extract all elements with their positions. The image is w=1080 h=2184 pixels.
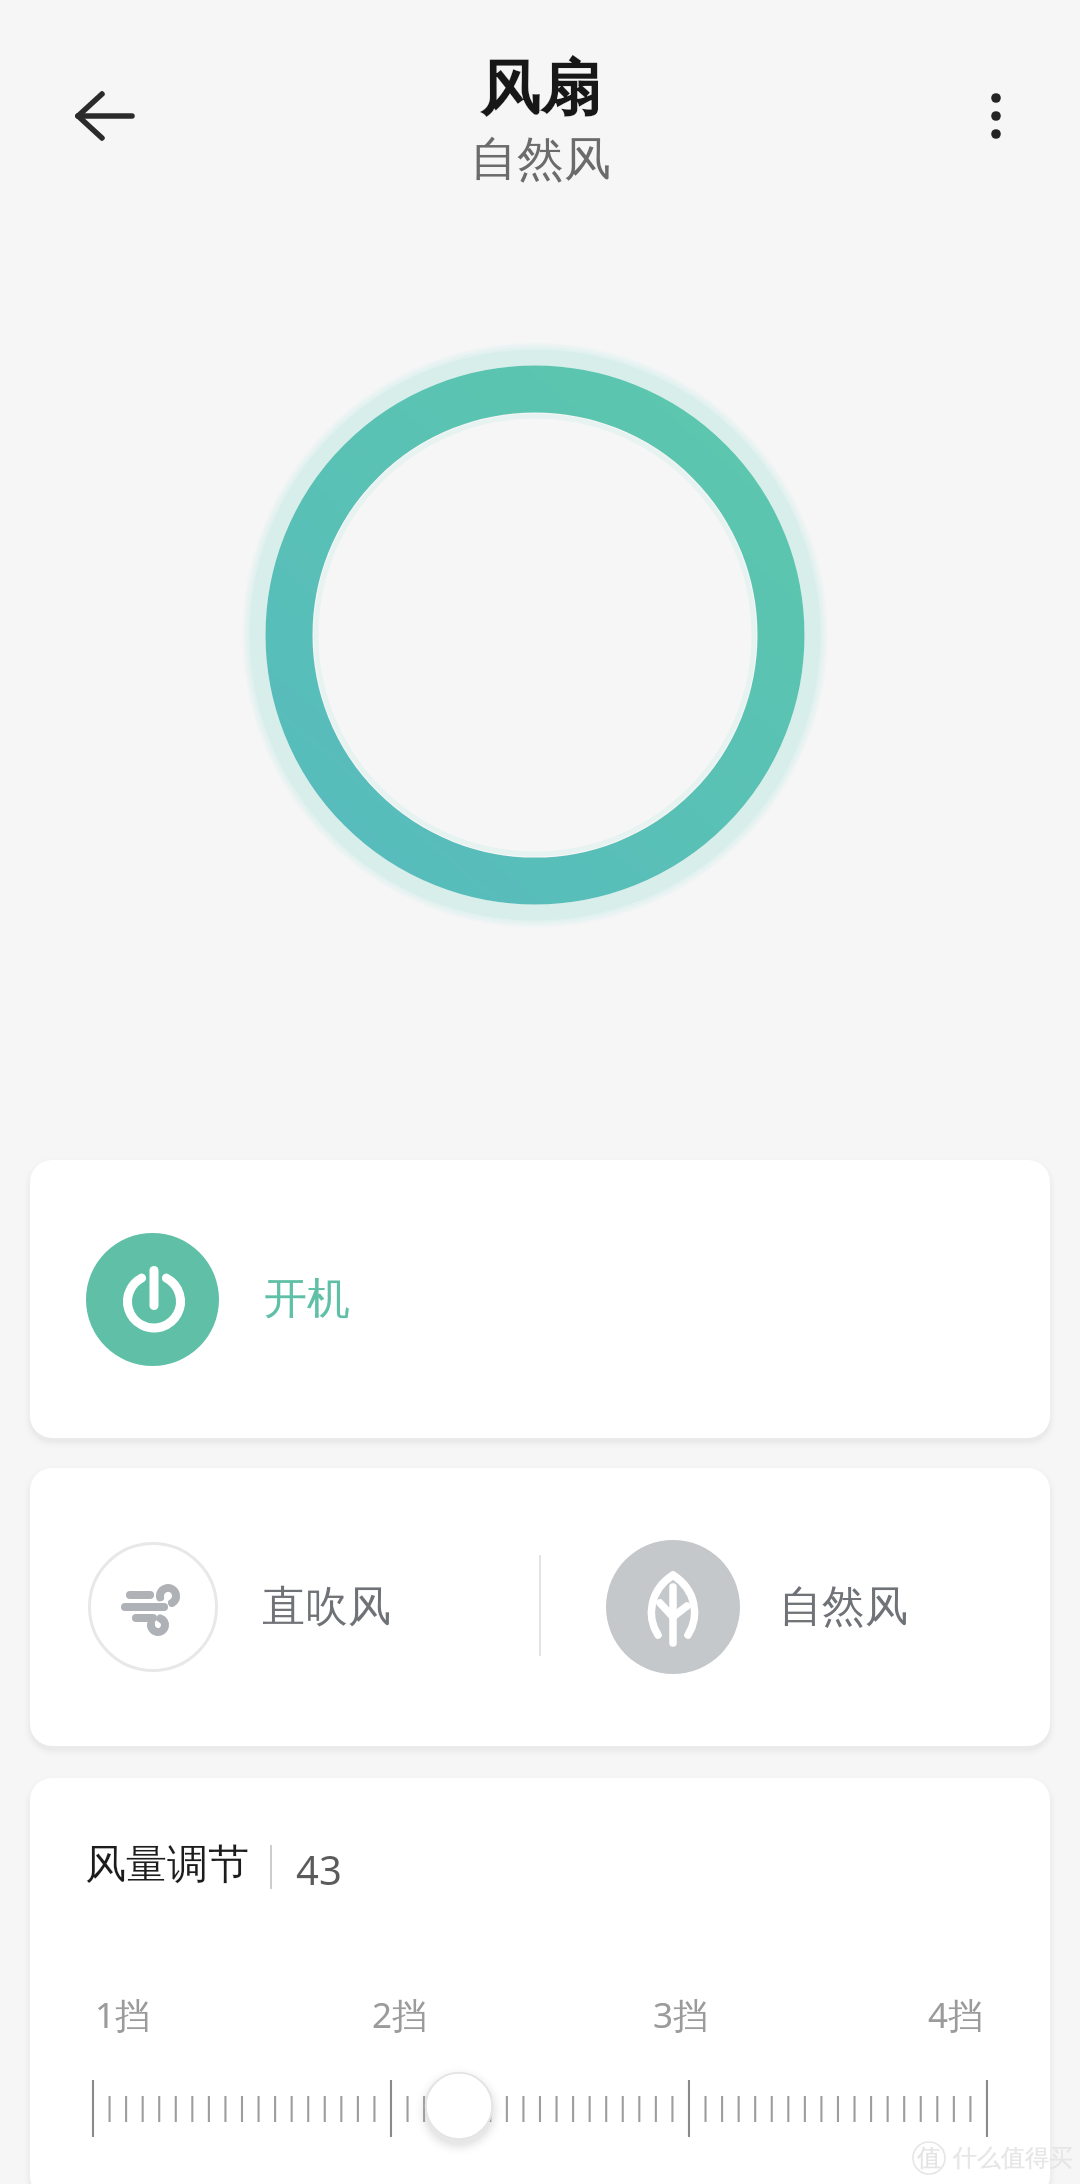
button[interactable]: Back: [60, 72, 150, 162]
staticText: 开机: [264, 1272, 350, 1326]
button[interactable]: 开机: [30, 1160, 1050, 1438]
staticText: 3挡: [653, 1991, 709, 2039]
staticText: 1挡: [95, 1991, 151, 2039]
button[interactable]: More options: [958, 70, 1034, 146]
staticText: 2挡: [372, 1991, 428, 2039]
button[interactable]: 直吹风: [30, 1468, 539, 1746]
button[interactable]: Fan speed: [407, 2054, 511, 2158]
button[interactable]: 自然风: [539, 1468, 1050, 1746]
staticText: 自然风: [779, 1580, 908, 1634]
staticText: 直吹风: [262, 1580, 391, 1634]
staticText: 风扇: [480, 51, 600, 127]
button[interactable]: Fan power dial: [250, 350, 820, 920]
staticText: 什么值得买: [953, 2143, 1073, 2173]
staticText: 43: [296, 1842, 342, 1896]
staticText: 值: [917, 2143, 941, 2173]
staticText: 自然风: [470, 130, 611, 189]
staticText: 4挡: [928, 1991, 984, 2039]
staticText: 风量调节: [85, 1839, 249, 1891]
